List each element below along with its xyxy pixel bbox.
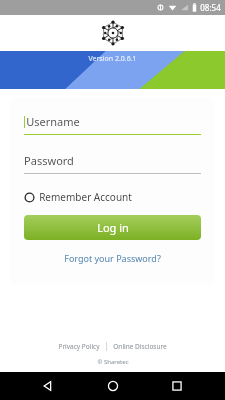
staticText: Version 2.0.6.1: [88, 54, 137, 64]
staticText: Log in: [97, 220, 129, 235]
button[interactable]: Back: [31, 372, 65, 400]
staticText: Enroll: [46, 113, 75, 127]
button[interactable]: Remember Account: [24, 190, 132, 204]
button[interactable]: Recents: [160, 372, 194, 400]
button[interactable]: Log in: [24, 215, 201, 240]
button[interactable]: Password: [24, 153, 201, 174]
button[interactable]: Home: [96, 372, 130, 400]
button[interactable]: Online Disclosure: [107, 340, 173, 353]
staticText: Remember Account: [39, 190, 132, 204]
staticText: © Sharetec: [97, 358, 129, 366]
button[interactable]: Username: [24, 114, 201, 135]
staticText: 08:54: [200, 2, 221, 13]
button[interactable]: Enroll: [38, 111, 83, 129]
staticText: Online Disclosure: [113, 342, 167, 351]
staticText: Password: [24, 153, 74, 168]
staticText: Privacy Policy: [58, 342, 100, 351]
button[interactable]: Privacy Policy: [52, 340, 106, 353]
staticText: Username: [26, 114, 80, 129]
button[interactable]: Forgot your Password?: [24, 252, 201, 264]
staticText: Forgot your Password?: [64, 252, 161, 264]
